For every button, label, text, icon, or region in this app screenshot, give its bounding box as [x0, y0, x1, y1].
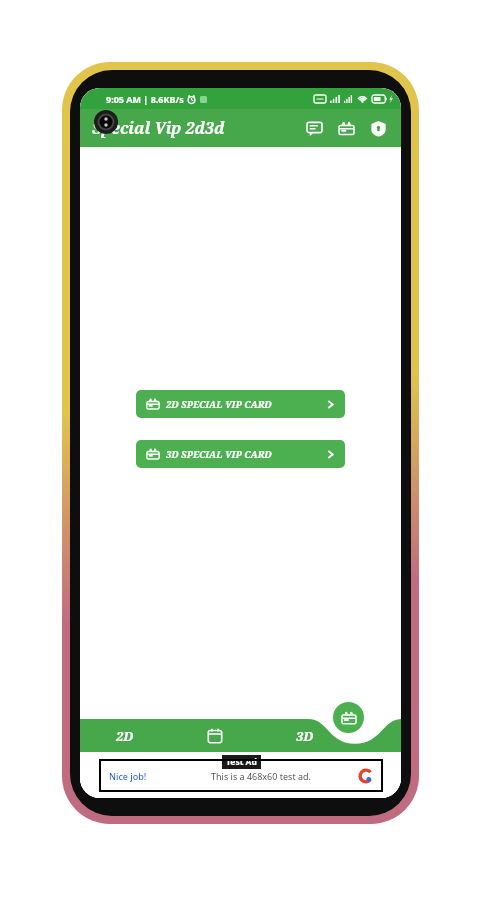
staticText: 2D: [116, 727, 134, 745]
button[interactable]: 3D SPECIAL VIP CARD: [136, 440, 345, 468]
button[interactable]: 2D: [80, 719, 170, 752]
staticText: Special Vip 2d3d: [92, 117, 225, 139]
button[interactable]: Calendar: [170, 719, 260, 752]
staticText: Test Ad: [226, 756, 257, 768]
staticText: 3D: [296, 727, 314, 745]
button[interactable]: Add card: [333, 702, 364, 733]
staticText: 3D SPECIAL VIP CARD: [166, 448, 326, 461]
button[interactable]: 3D: [260, 719, 350, 752]
button[interactable]: Nice job!: [99, 759, 383, 792]
button[interactable]: Cards: [331, 113, 361, 143]
staticText: 9:05 AM | 8.6KB/s: [106, 93, 184, 105]
button[interactable]: 2D SPECIAL VIP CARD: [136, 390, 345, 418]
staticText: This is a 468x60 test ad.: [163, 770, 359, 782]
button[interactable]: Messages: [299, 113, 329, 143]
button[interactable]: Security: [363, 113, 393, 143]
staticText: 2D SPECIAL VIP CARD: [166, 398, 326, 411]
staticText: Nice job!: [109, 770, 147, 782]
